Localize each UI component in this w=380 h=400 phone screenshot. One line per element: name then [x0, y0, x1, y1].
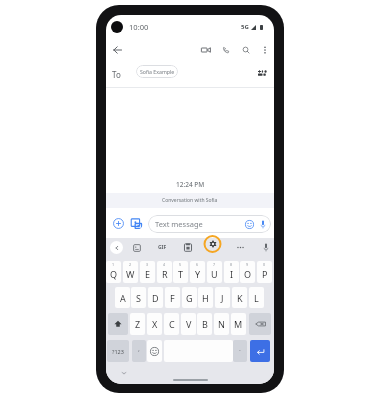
button[interactable]: R — [157, 261, 172, 283]
button[interactable]: Search — [239, 43, 253, 57]
staticText: C — [169, 318, 175, 330]
staticText: 3 — [146, 262, 149, 267]
button[interactable]: X — [147, 313, 162, 335]
staticText: X — [152, 318, 158, 330]
staticText: D — [152, 292, 159, 304]
staticText: N — [218, 318, 225, 330]
staticText: 12:24 PM — [176, 180, 205, 189]
button[interactable]: Q — [106, 261, 121, 283]
staticText: Sofia Example — [140, 68, 175, 75]
button[interactable]: Video call — [199, 43, 213, 57]
staticText: , — [138, 344, 140, 354]
button[interactable]: Call — [219, 43, 233, 57]
staticText: H — [202, 292, 209, 304]
staticText: J — [221, 292, 224, 304]
staticText: F — [170, 292, 175, 304]
button[interactable]: Clipboard — [181, 241, 194, 254]
button[interactable]: Stickers — [129, 216, 143, 230]
button[interactable]: S — [131, 287, 146, 308]
staticText: 10:00 — [129, 22, 149, 32]
staticText: M — [234, 318, 243, 330]
staticText: To — [112, 69, 121, 80]
staticText: T — [178, 268, 184, 280]
staticText: 0 — [263, 262, 266, 267]
staticText: Y — [195, 268, 201, 280]
button[interactable]: H — [198, 287, 213, 308]
button[interactable]: N — [214, 313, 229, 335]
staticText: 1 — [112, 262, 115, 267]
button[interactable]: Stickers — [130, 241, 143, 254]
button[interactable]: K — [232, 287, 247, 308]
staticText: S — [136, 292, 141, 304]
staticText: 8 — [230, 262, 233, 267]
staticText: Z — [135, 318, 141, 330]
staticText: A — [120, 292, 126, 304]
button[interactable]: G — [182, 287, 197, 308]
button[interactable]: J — [215, 287, 230, 308]
staticText: 7 — [213, 262, 216, 267]
button[interactable]: Comma — [132, 340, 146, 362]
staticText: 5G — [241, 23, 249, 31]
button[interactable]: E — [140, 261, 155, 283]
button[interactable]: Shift — [108, 313, 128, 335]
button[interactable]: P — [257, 261, 272, 283]
staticText: K — [237, 292, 243, 304]
staticText: ?123 — [112, 348, 124, 355]
staticText: P — [262, 268, 268, 280]
button[interactable]: More options — [259, 44, 270, 55]
button[interactable]: U — [207, 261, 222, 283]
staticText: GIF — [158, 244, 167, 251]
button[interactable]: B — [197, 313, 212, 335]
staticText: Q — [110, 268, 118, 280]
button[interactable]: Symbols — [107, 340, 129, 362]
staticText: R — [162, 268, 168, 280]
button[interactable]: Sofia Example — [136, 65, 178, 78]
button[interactable]: A — [115, 287, 130, 308]
button[interactable]: I — [224, 261, 239, 283]
staticText: U — [211, 268, 218, 280]
button[interactable]: GIF — [156, 241, 169, 254]
staticText: V — [186, 318, 192, 330]
button[interactable]: M — [231, 313, 246, 335]
button[interactable]: V — [181, 313, 196, 335]
button[interactable]: W — [123, 261, 138, 283]
button[interactable]: Back — [110, 43, 124, 57]
button[interactable]: More — [234, 241, 247, 254]
staticText: . — [239, 344, 241, 354]
button[interactable]: Settings — [200, 235, 225, 253]
button[interactable]: C — [164, 313, 179, 335]
staticText: 5 — [179, 262, 182, 267]
staticText: 2 — [129, 262, 132, 267]
button[interactable]: Y — [190, 261, 205, 283]
staticText: 4 — [163, 262, 166, 267]
button[interactable]: Emoji — [147, 340, 162, 362]
button[interactable]: T — [173, 261, 188, 283]
button[interactable]: D — [148, 287, 163, 308]
button[interactable]: Back — [110, 241, 123, 254]
button[interactable]: Backspace — [249, 313, 271, 335]
button[interactable]: Text message — [148, 215, 271, 233]
staticText: Text message — [155, 219, 203, 229]
staticText: Conversation with Sofia — [162, 197, 218, 204]
button[interactable]: Enter — [250, 340, 270, 362]
button[interactable]: Add people — [256, 66, 269, 79]
button[interactable]: L — [249, 287, 264, 308]
staticText: B — [202, 318, 208, 330]
staticText: W — [126, 268, 135, 280]
button[interactable]: Hide keyboard — [119, 368, 129, 378]
staticText: L — [254, 292, 259, 304]
button[interactable]: Voice input — [259, 241, 272, 254]
staticText: I — [230, 268, 234, 280]
staticText: 6 — [196, 262, 199, 267]
button[interactable]: F — [165, 287, 180, 308]
button[interactable]: Add attachment — [111, 216, 125, 230]
button[interactable]: Z — [130, 313, 145, 335]
staticText: O — [244, 268, 252, 280]
staticText: E — [145, 268, 151, 280]
staticText: 9 — [246, 262, 249, 267]
button[interactable]: O — [240, 261, 255, 283]
staticText: G — [186, 292, 193, 304]
